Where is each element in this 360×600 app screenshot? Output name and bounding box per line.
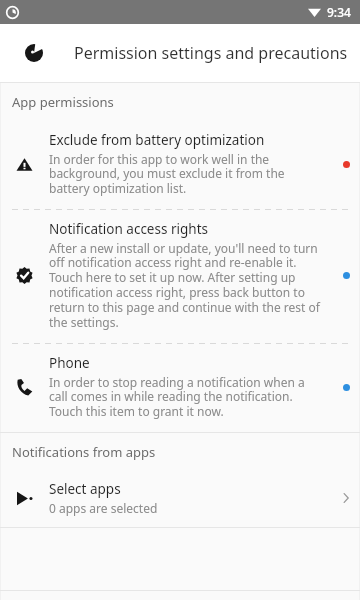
staticText: 0 apps are selected	[49, 500, 158, 516]
staticText: Exclude from battery optimization	[49, 131, 265, 149]
staticText: Permission settings and precautions	[74, 42, 348, 64]
staticText: Select apps	[49, 480, 121, 498]
button[interactable]: Exclude from battery optimization	[0, 121, 360, 209]
staticText: Phone	[49, 354, 90, 372]
staticText: In order for this app to work well in th…	[49, 151, 322, 197]
staticText: In order to stop reading a notification …	[49, 374, 322, 420]
staticText: 9:34	[327, 4, 351, 20]
staticText: Notification access rights	[49, 220, 208, 238]
button[interactable]: Notification access rights	[0, 210, 360, 343]
staticText: After a new install or update, you'll ne…	[49, 240, 322, 331]
button[interactable]: App icon	[21, 40, 47, 66]
button[interactable]: Phone permission	[0, 344, 360, 432]
staticText: App permissions	[12, 93, 114, 111]
button[interactable]: Select apps	[0, 471, 360, 527]
staticText: Notifications from apps	[12, 443, 156, 461]
other: Notification	[6, 6, 19, 19]
